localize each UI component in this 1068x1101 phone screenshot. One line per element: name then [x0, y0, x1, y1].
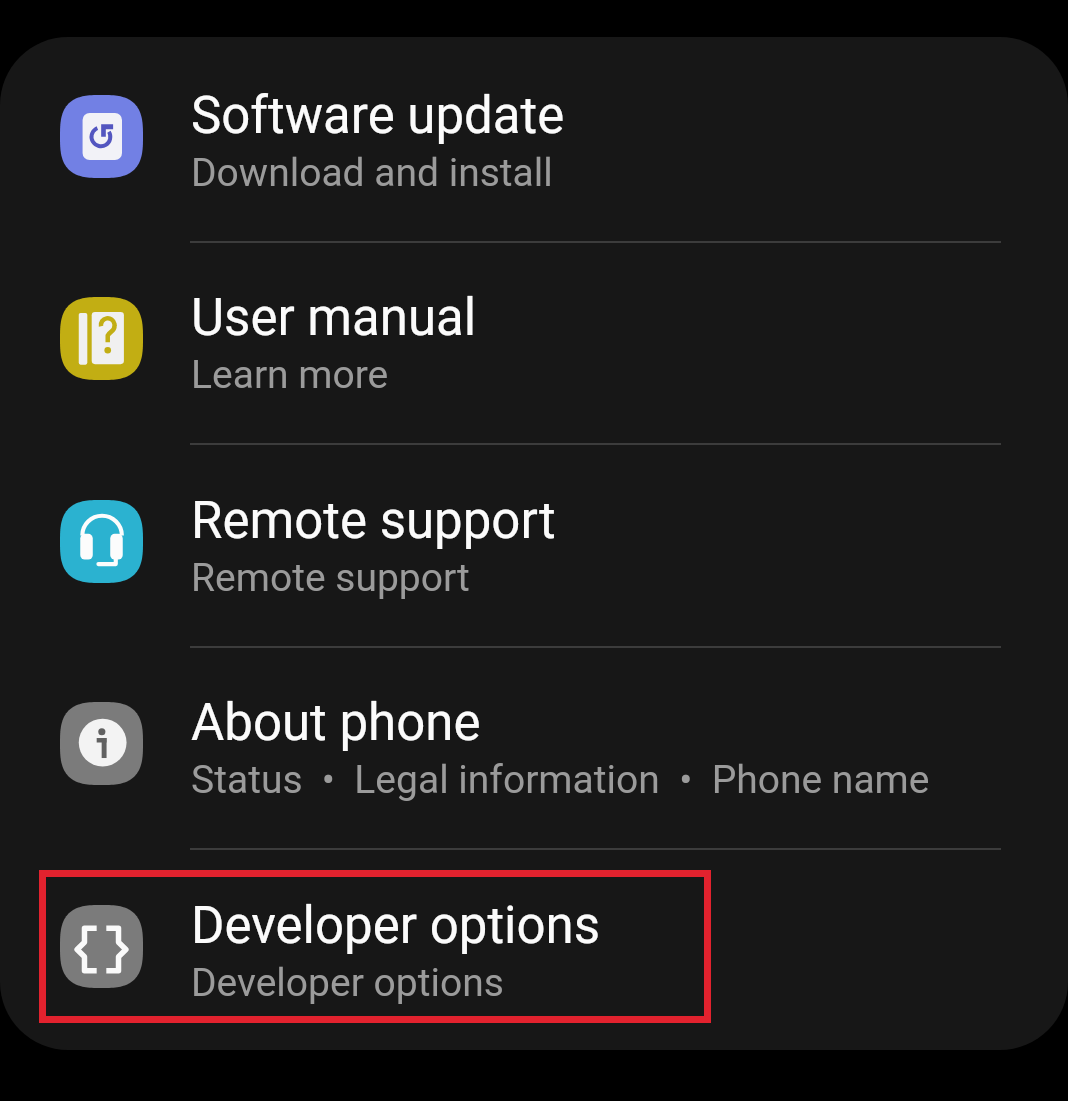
- other: Remote support: [60, 500, 143, 583]
- button[interactable]: Developer options: [0, 847, 1068, 1049]
- button[interactable]: Remote support: [0, 442, 1068, 644]
- staticText: Learn more: [191, 352, 389, 398]
- other: Software update: [60, 95, 143, 178]
- staticText: Developer options: [191, 896, 601, 956]
- staticText: Remote support: [191, 555, 470, 601]
- button[interactable]: About phone: [0, 644, 1068, 846]
- button[interactable]: User manual: [0, 239, 1068, 441]
- staticText: User manual: [191, 288, 477, 348]
- other: About phone: [60, 702, 143, 785]
- staticText: Developer options: [191, 960, 504, 1006]
- staticText: Download and install: [191, 150, 553, 196]
- staticText: Software update: [191, 86, 565, 146]
- other: User manual: [60, 297, 143, 380]
- staticText: Remote support: [191, 491, 556, 551]
- staticText: Status • Legal information • Phone name: [191, 757, 930, 803]
- other: Developer options: [60, 905, 143, 988]
- button[interactable]: Software update: [0, 37, 1068, 239]
- staticText: About phone: [191, 693, 481, 753]
